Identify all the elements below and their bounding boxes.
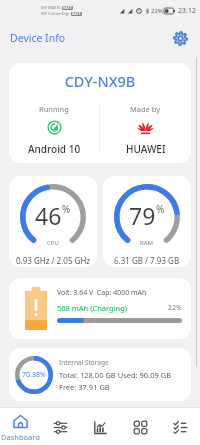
- staticText: RAM: [140, 239, 154, 247]
- staticText: %: [156, 202, 165, 216]
- button[interactable]: Apps: [120, 408, 160, 445]
- staticText: MY CelcomDigi: [41, 11, 70, 16]
- button[interactable]: 70.38%: [9, 348, 191, 401]
- staticText: Volt: 3.64 V Cap: 4000 mAh: [57, 288, 147, 298]
- staticText: Dashboard: [1, 432, 40, 442]
- staticText: Made by: [130, 104, 161, 114]
- staticText: VoLTE: [72, 12, 81, 16]
- staticText: 22%: [151, 7, 163, 15]
- staticText: CPU: [47, 239, 59, 247]
- staticText: Android 10: [28, 142, 81, 155]
- staticText: Device Info: [10, 31, 66, 45]
- button[interactable]: CDY-NX9B: [9, 63, 191, 163]
- staticText: Total: 128.00 GB Used: 90.09 GB: [59, 370, 172, 380]
- button[interactable]: Tests: [160, 408, 200, 445]
- staticText: 70.38%: [22, 370, 46, 380]
- staticText: 46: [35, 200, 62, 231]
- staticText: CDY-NX9B: [9, 71, 191, 91]
- staticText: HUAWEI: [126, 142, 166, 155]
- staticText: %: [62, 202, 71, 216]
- staticText: 22%: [168, 303, 182, 313]
- button[interactable]: 46: [9, 176, 97, 267]
- staticText: 0.93 GHz / 2.05 GHz: [16, 255, 91, 266]
- staticText: 23:12: [178, 6, 196, 16]
- button[interactable]: Controls: [40, 408, 80, 445]
- staticText: MY MAXIS: [41, 5, 61, 10]
- staticText: 508 mAh (Charging): [57, 303, 128, 313]
- staticText: 6.31 GB / 7.93 GB: [114, 255, 180, 266]
- staticText: VoLTE: [63, 6, 72, 10]
- button[interactable]: Settings: [168, 26, 192, 50]
- staticText: 79: [129, 200, 156, 231]
- button[interactable]: Statistics: [80, 408, 120, 445]
- button[interactable]: 79: [103, 176, 191, 267]
- staticText: Free: 37.91 GB: [59, 382, 110, 392]
- staticText: Running: [39, 104, 69, 114]
- staticText: Internal Storage: [59, 358, 109, 367]
- button[interactable]: Dashboard: [0, 408, 40, 445]
- button[interactable]: Volt: 3.64 V Cap: 4000 mAh: [9, 278, 191, 339]
